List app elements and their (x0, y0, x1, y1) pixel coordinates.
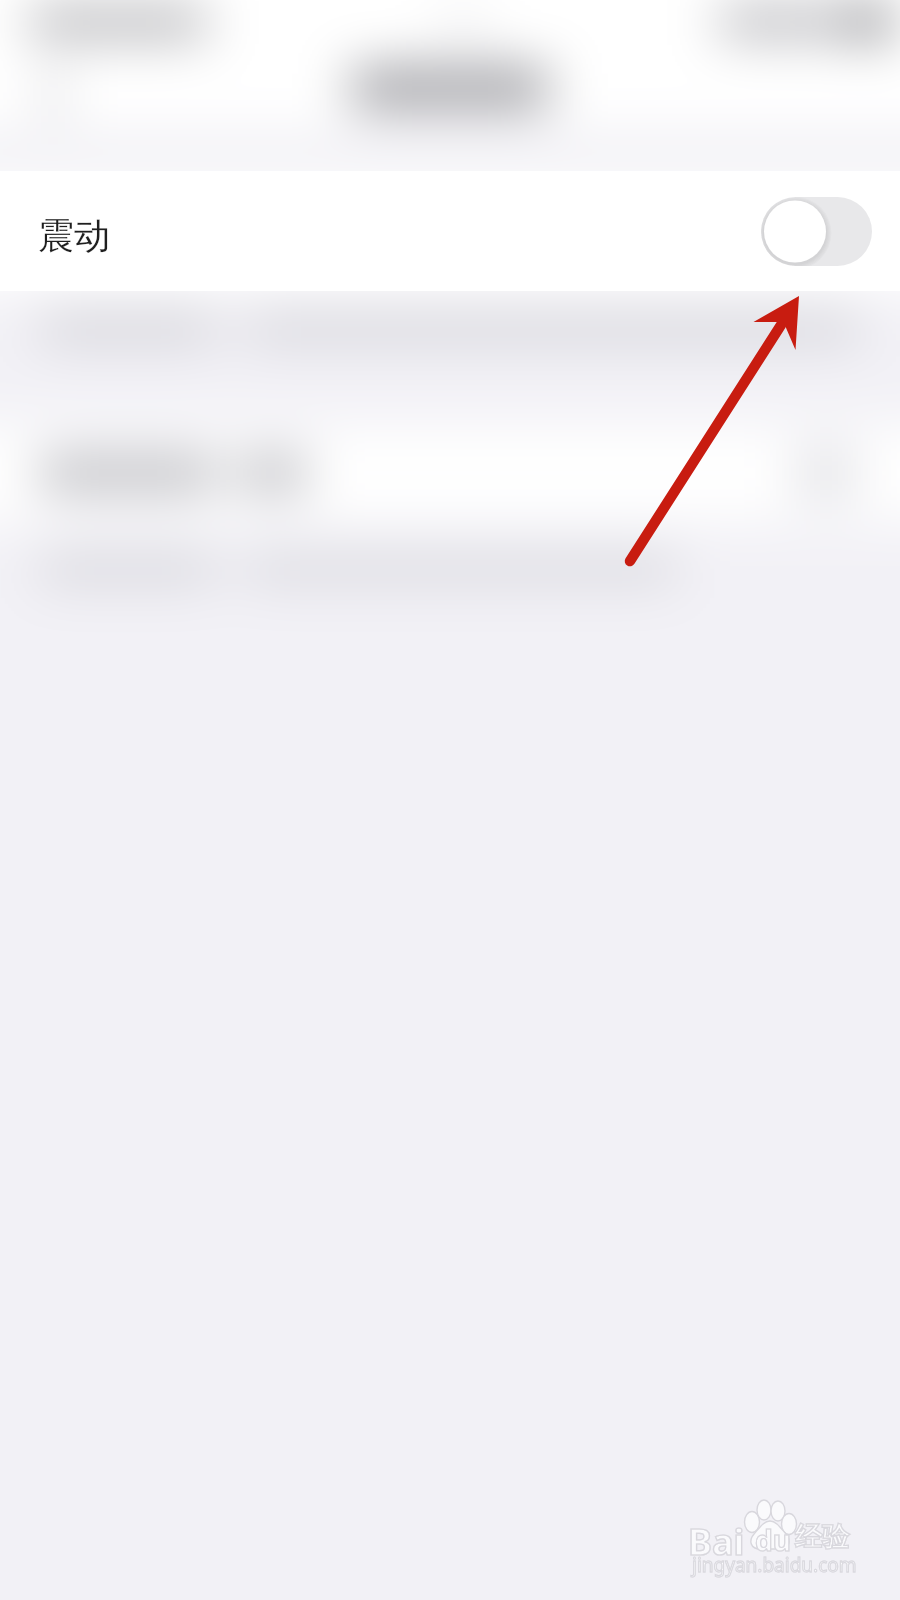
staticText: 经验 (795, 1520, 849, 1554)
staticText: jingyan.baidu.com (692, 1552, 857, 1578)
staticText: du (755, 1521, 791, 1559)
staticText: 震动 (38, 213, 110, 258)
staticText: jingyan.baidu.com (692, 1552, 857, 1578)
staticText: du (755, 1521, 791, 1559)
staticText: 经验 (795, 1520, 849, 1554)
button[interactable]: Vibration toggle (761, 197, 872, 266)
button[interactable]: 震动 (0, 171, 900, 291)
staticText: Bai (688, 1517, 745, 1566)
staticText: Bai (688, 1517, 745, 1566)
